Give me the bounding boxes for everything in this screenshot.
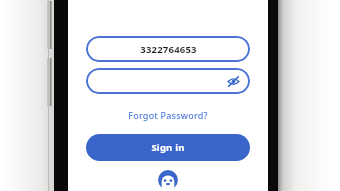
button[interactable]: Show password bbox=[226, 74, 241, 89]
button[interactable]: Show password bbox=[86, 68, 250, 94]
staticText: Forgot Password? bbox=[128, 109, 208, 121]
staticText: Sign in bbox=[151, 141, 185, 154]
button[interactable]: 3322764653 bbox=[86, 36, 250, 62]
button[interactable]: Sign in bbox=[86, 134, 250, 161]
button[interactable]: Profile bbox=[157, 169, 179, 191]
staticText: 3322764653 bbox=[140, 43, 197, 56]
button[interactable]: Forgot Password? bbox=[122, 107, 214, 123]
